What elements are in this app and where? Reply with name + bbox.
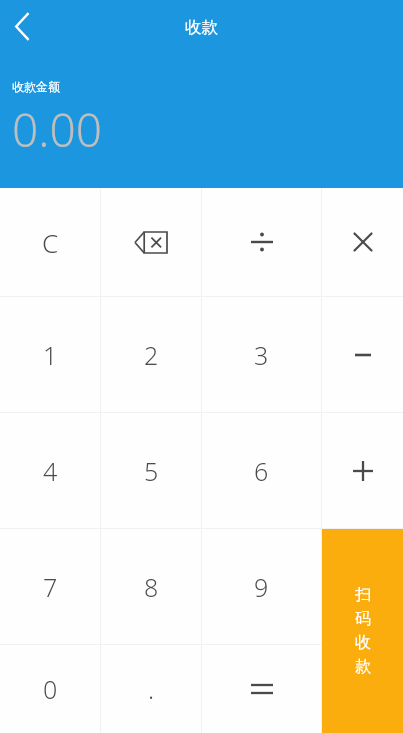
staticText: 0 <box>43 672 58 706</box>
button[interactable]: 4 <box>0 413 100 528</box>
button[interactable]: 2 <box>101 297 201 412</box>
staticText: 扫 <box>355 585 371 605</box>
staticText: 8 <box>144 570 159 604</box>
staticText: 收 <box>355 633 371 653</box>
button[interactable]: Multiply <box>322 188 403 296</box>
button[interactable]: C <box>0 188 100 296</box>
staticText: 款 <box>355 657 371 677</box>
button[interactable]: 8 <box>101 529 201 644</box>
staticText: 4 <box>43 454 58 488</box>
staticText: 9 <box>254 570 269 604</box>
staticText: C <box>42 225 59 260</box>
button[interactable]: Equals <box>202 645 321 733</box>
staticText: . <box>148 672 155 706</box>
staticText: 收款 <box>0 17 403 38</box>
staticText: 6 <box>254 454 269 488</box>
button[interactable]: 1 <box>0 297 100 412</box>
button[interactable]: 5 <box>101 413 201 528</box>
button[interactable]: Minus <box>322 297 403 412</box>
staticText: 0.00 <box>12 98 103 161</box>
staticText: 1 <box>43 338 58 372</box>
button[interactable]: Divide <box>202 188 321 296</box>
button[interactable]: Backspace <box>101 188 201 296</box>
button[interactable]: Plus <box>322 413 403 528</box>
staticText: 码 <box>355 609 371 629</box>
button[interactable]: . <box>101 645 201 733</box>
button[interactable]: 7 <box>0 529 100 644</box>
staticText: 收款金额 <box>12 79 60 94</box>
staticText: 5 <box>144 454 159 488</box>
staticText: 3 <box>254 338 269 372</box>
staticText: 7 <box>43 570 58 604</box>
staticText: 2 <box>144 338 159 372</box>
button[interactable]: 0 <box>0 645 100 733</box>
button[interactable]: 扫 <box>322 529 403 733</box>
button[interactable]: 9 <box>202 529 321 644</box>
button[interactable]: 3 <box>202 297 321 412</box>
button[interactable]: Back <box>0 2 44 50</box>
button[interactable]: 6 <box>202 413 321 528</box>
